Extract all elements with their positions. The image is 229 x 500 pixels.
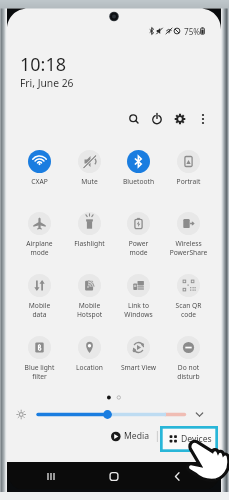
button[interactable]: Devices <box>160 426 218 452</box>
staticText: Link to Windows <box>114 301 163 319</box>
staticText: Power mode <box>114 239 163 257</box>
button[interactable]: CXAP <box>15 150 64 197</box>
button[interactable]: Link to Windows <box>114 274 163 321</box>
button[interactable]: More options <box>192 108 214 130</box>
staticText: Devices <box>181 433 212 445</box>
button[interactable]: Bluetooth <box>114 150 163 197</box>
staticText: Blue light filter <box>15 363 64 381</box>
button[interactable]: Search <box>123 108 145 130</box>
button[interactable]: Location <box>65 336 114 383</box>
staticText: Smart View <box>114 363 163 372</box>
staticText: Airplane mode <box>15 239 64 257</box>
button[interactable]: Do not disturb <box>164 336 213 383</box>
staticText: Bluetooth <box>114 177 163 186</box>
button[interactable]: Mute <box>65 150 114 197</box>
staticText: Portrait <box>164 177 213 186</box>
button[interactable]: Mobile Hotspot <box>65 274 114 321</box>
button[interactable]: Power mode <box>114 212 163 259</box>
button[interactable]: Scan QR code <box>164 274 213 321</box>
button[interactable]: Blue light filter <box>15 336 64 383</box>
button[interactable]: Flashlight <box>65 212 114 259</box>
staticText: Fri, June 26 <box>20 76 74 90</box>
staticText: Scan QR code <box>164 301 213 319</box>
button[interactable]: Smart View <box>114 336 163 383</box>
staticText: Do not disturb <box>164 363 213 381</box>
staticText: Mobile Hotspot <box>65 301 114 319</box>
button[interactable]: Mobile data <box>15 274 64 321</box>
staticText: Mute <box>65 177 114 186</box>
staticText: 10:18 <box>20 52 67 77</box>
button[interactable]: Power <box>146 108 168 130</box>
button[interactable]: Portrait <box>164 150 213 197</box>
button[interactable]: Media <box>108 426 150 446</box>
button[interactable]: Settings <box>169 108 191 130</box>
staticText: Flashlight <box>65 239 114 248</box>
staticText: Wireless PowerShare <box>164 239 213 257</box>
staticText: Location <box>65 363 114 372</box>
staticText: 75% <box>184 26 201 37</box>
staticText: Mobile data <box>15 301 64 319</box>
button[interactable]: Airplane mode <box>15 212 64 259</box>
button[interactable]: Wireless PowerShare <box>164 212 213 259</box>
staticText: CXAP <box>15 177 64 186</box>
staticText: Media <box>124 430 149 442</box>
